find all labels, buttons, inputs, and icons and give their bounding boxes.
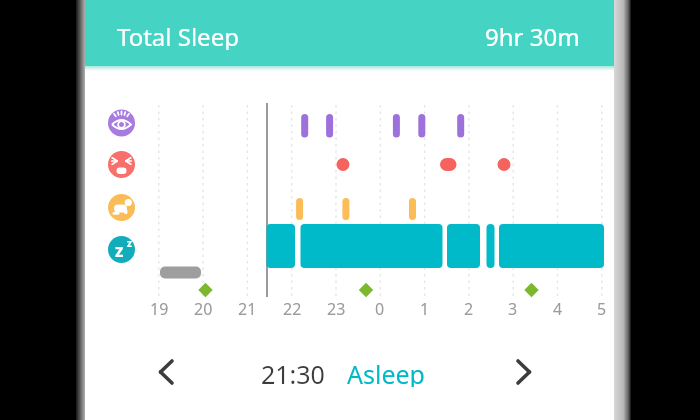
staticText: Asleep [347,357,425,387]
staticText: 1 [420,298,430,318]
staticText: 22 [283,298,302,318]
staticText: z [115,239,124,261]
staticText: 3 [508,298,518,318]
staticText: Total Sleep [117,20,239,50]
staticText: z [127,236,132,248]
button[interactable] [108,236,135,263]
button[interactable] [146,352,186,392]
button[interactable] [108,151,135,178]
staticText: 4 [553,298,563,318]
staticText: 21:30 [261,357,325,387]
staticText: 2 [464,298,474,318]
button[interactable] [85,0,614,66]
button[interactable] [108,109,135,137]
button[interactable] [108,194,135,221]
staticText: 5 [597,298,607,318]
button[interactable]: Asleep [331,357,441,387]
staticText: 0 [375,298,385,318]
button[interactable] [504,352,544,392]
staticText: 9hr 30m [485,20,580,50]
staticText: 21 [238,298,257,318]
staticText: 20 [194,298,213,318]
staticText: 19 [150,298,169,318]
staticText: 23 [327,298,346,318]
